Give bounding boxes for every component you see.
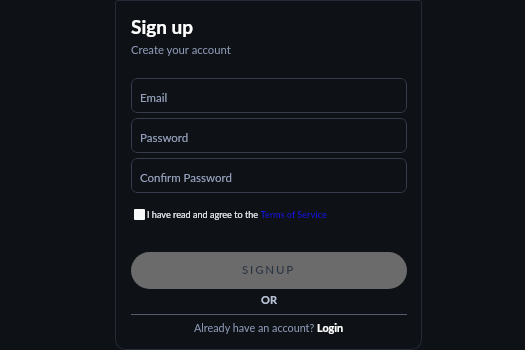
button[interactable]: Confirm Password: [131, 158, 407, 193]
button[interactable]: I have read and agree to the Terms of Se…: [147, 209, 327, 220]
button[interactable]: SIGNUP: [131, 252, 407, 289]
staticText: Create your account: [131, 43, 231, 57]
staticText: SIGNUP: [242, 263, 296, 277]
staticText: OR: [131, 293, 407, 306]
button[interactable]: Password: [131, 118, 407, 153]
button[interactable]: Email: [131, 78, 407, 113]
staticText: Email: [140, 91, 168, 105]
staticText: Sign up: [131, 15, 194, 38]
button[interactable]: Agree to the Terms of Service: [134, 209, 145, 220]
staticText: Confirm Password: [140, 171, 232, 185]
staticText: Password: [140, 131, 189, 145]
button[interactable]: Already have an account? Login: [131, 321, 407, 334]
staticText: Already have an account? Login: [194, 321, 344, 334]
